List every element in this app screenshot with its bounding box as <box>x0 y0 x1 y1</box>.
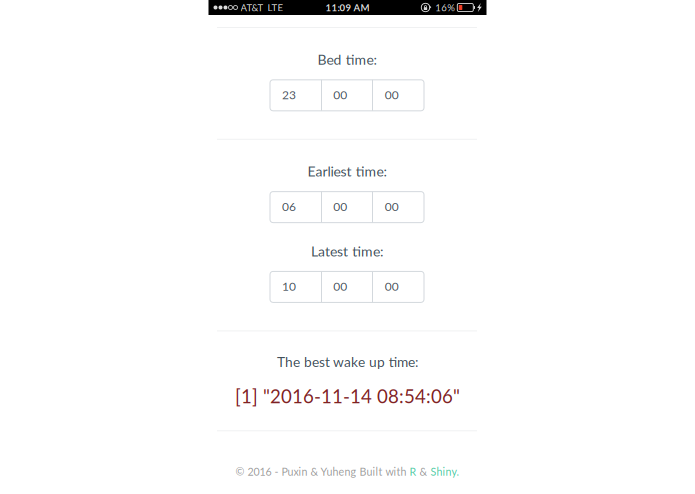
staticText: Earliest time: <box>307 163 387 180</box>
button[interactable]: 00 <box>321 80 373 111</box>
staticText: 00 <box>385 199 399 213</box>
staticText: 10 <box>282 279 296 293</box>
staticText: 00 <box>385 87 399 102</box>
staticText: AT&T <box>240 2 263 13</box>
staticText: The best wake up time: <box>277 353 418 370</box>
staticText: Latest time: <box>311 243 384 259</box>
button[interactable]: 23 <box>270 80 321 111</box>
button[interactable]: 00 <box>321 192 373 223</box>
staticText: 00 <box>385 279 399 293</box>
staticText: 00 <box>333 199 347 213</box>
staticText: 11:09 AM <box>325 2 369 13</box>
staticText: 23 <box>282 87 296 102</box>
staticText: Shiny. <box>430 465 459 478</box>
button[interactable]: Shiny. <box>430 465 459 478</box>
staticText: R <box>409 465 416 478</box>
button[interactable]: 00 <box>373 192 424 223</box>
staticText: 06 <box>282 199 296 213</box>
staticText: 00 <box>333 87 347 102</box>
staticText: LTE <box>267 2 283 13</box>
staticText: 00 <box>333 279 347 293</box>
button[interactable]: 06 <box>270 192 321 223</box>
staticText: © 2016 - Puxin & Yuheng Built with <box>235 465 409 478</box>
staticText: Bed time: <box>317 51 377 68</box>
staticText: & <box>416 465 430 478</box>
button[interactable]: 00 <box>321 271 373 302</box>
button[interactable]: 00 <box>373 271 424 302</box>
staticText: 16% <box>435 2 455 13</box>
staticText: [1] "2016-11-14 08:54:06" <box>235 385 460 407</box>
button[interactable]: 10 <box>270 271 321 302</box>
button[interactable]: 00 <box>373 80 424 111</box>
button[interactable]: R <box>409 465 416 478</box>
